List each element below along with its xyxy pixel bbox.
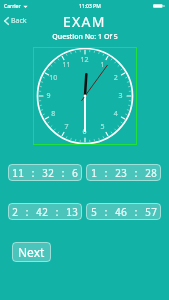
- staticText: Next: [18, 244, 45, 260]
- button[interactable]: 1 : 23 : 28: [86, 164, 161, 181]
- staticText: 11:03 PM: [79, 3, 101, 10]
- button[interactable]: 5 : 46 : 57: [86, 203, 161, 220]
- staticText: Question No: 1 Of 5: [52, 32, 118, 42]
- button[interactable]: 2 : 42 : 13: [8, 203, 82, 220]
- button[interactable]: Back: [0, 13, 31, 29]
- staticText: Carrier: [4, 3, 21, 10]
- staticText: Back: [11, 16, 27, 26]
- staticText: 2 : 42 : 13: [12, 205, 78, 219]
- button[interactable]: 11 : 32 : 6: [8, 164, 82, 181]
- staticText: 5 : 46 : 57: [91, 205, 157, 219]
- staticText: EXAM: [63, 12, 106, 30]
- staticText: 11 : 32 : 6: [12, 166, 78, 180]
- button[interactable]: Next: [12, 242, 51, 262]
- staticText: 1 : 23 : 28: [91, 166, 157, 180]
